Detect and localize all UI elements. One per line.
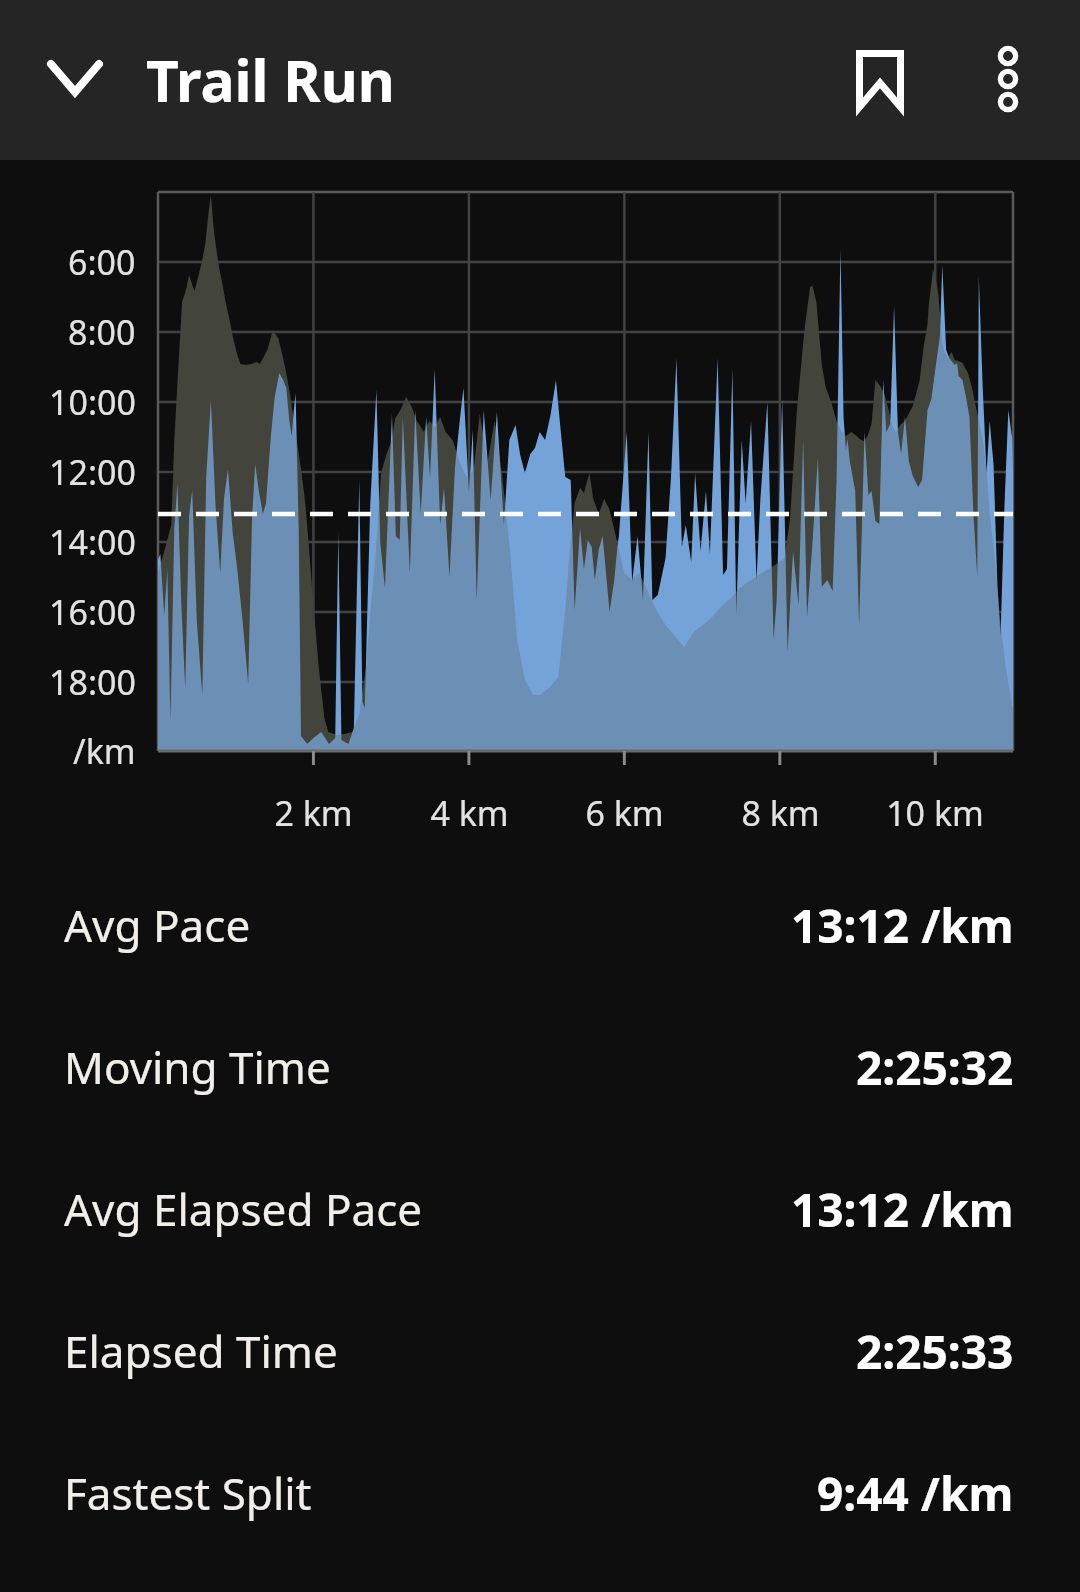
staticText: 2 km <box>274 790 353 836</box>
staticText: 12:00 <box>49 449 136 495</box>
staticText: 8 km <box>741 790 820 836</box>
staticText: Avg Pace <box>64 895 251 955</box>
staticText: Moving Time <box>64 1037 331 1097</box>
staticText: Elapsed Time <box>64 1321 338 1381</box>
staticText: 10:00 <box>49 379 136 425</box>
staticText: Trail Run <box>146 41 395 119</box>
button[interactable] <box>830 29 930 129</box>
staticText: 6 km <box>585 790 664 836</box>
button[interactable]: Fastest Split <box>0 1422 1080 1564</box>
staticText: 13:12 /km <box>791 1178 1014 1241</box>
staticText: 14:00 <box>49 519 136 565</box>
staticText: 16:00 <box>49 589 136 635</box>
staticText: 4 km <box>430 790 509 836</box>
button[interactable]: Moving Time <box>0 996 1080 1138</box>
button[interactable]: Elapsed Time <box>0 1280 1080 1422</box>
staticText: 13:12 /km <box>791 894 1014 957</box>
staticText: 2:25:33 <box>856 1320 1014 1383</box>
staticText: /km <box>73 728 136 774</box>
staticText: Avg Elapsed Pace <box>64 1179 423 1239</box>
button[interactable]: Avg Elapsed Pace <box>0 1138 1080 1280</box>
staticText: 6:00 <box>68 239 136 285</box>
staticText: Fastest Split <box>64 1463 312 1523</box>
staticText: 10 km <box>886 790 984 836</box>
staticText: 9:44 /km <box>817 1462 1014 1525</box>
button[interactable] <box>25 28 125 128</box>
button[interactable] <box>958 29 1058 129</box>
staticText: 2:25:32 <box>856 1036 1014 1099</box>
button[interactable]: Avg Pace <box>0 854 1080 996</box>
staticText: 8:00 <box>68 309 136 355</box>
staticText: 18:00 <box>49 659 136 705</box>
